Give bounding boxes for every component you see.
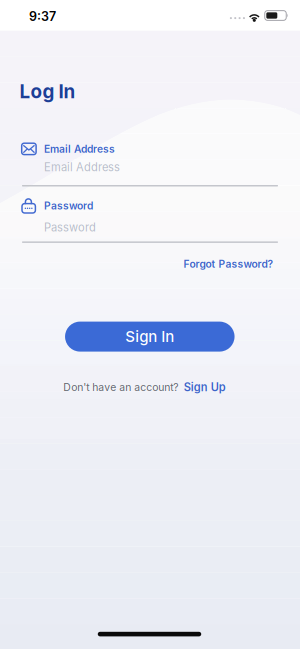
- staticText: Forgot Password?: [183, 258, 273, 270]
- button[interactable]: Password: [0, 197, 300, 249]
- staticText: Password: [44, 200, 93, 212]
- staticText: Sign Up: [184, 381, 226, 394]
- button[interactable]: Sign Up: [184, 381, 226, 394]
- button[interactable]: Sign In: [65, 322, 235, 352]
- button[interactable]: Forgot Password?: [183, 258, 273, 270]
- staticText: Log In: [19, 80, 75, 102]
- staticText: Email Address: [44, 161, 120, 174]
- staticText: Don't have an account?: [63, 381, 178, 393]
- staticText: 9:37: [29, 9, 56, 24]
- button[interactable]: Email Address: [0, 140, 300, 192]
- staticText: Email Address: [44, 143, 115, 155]
- staticText: Sign In: [125, 328, 174, 345]
- staticText: Password: [44, 221, 96, 234]
